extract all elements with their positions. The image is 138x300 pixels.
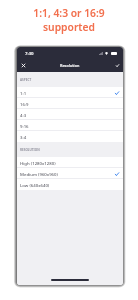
button[interactable]: Low (640x640) xyxy=(17,179,123,190)
staticText: 9:16 xyxy=(20,123,29,129)
button[interactable]: Close xyxy=(17,59,29,72)
staticText: 16:9 xyxy=(20,101,29,107)
staticText: 7:30 xyxy=(25,50,34,56)
button[interactable]: 16:9 xyxy=(17,98,123,109)
staticText: 1:1, 4:3 or 16:9 supported xyxy=(33,6,105,34)
staticText: ASPECT xyxy=(20,78,32,82)
staticText: High (1280x1280) xyxy=(20,160,56,166)
button[interactable]: 4:3 xyxy=(17,109,123,120)
staticText: RESOLUTION xyxy=(20,148,40,152)
staticText: 4:3 xyxy=(20,112,27,118)
button[interactable]: 3:4 xyxy=(17,131,123,142)
staticText: Resolution xyxy=(60,63,80,68)
staticText: Medium (960x960) xyxy=(20,171,58,177)
button[interactable]: 9:16 xyxy=(17,120,123,131)
staticText: 3:4 xyxy=(20,134,27,140)
staticText: Low (640x640) xyxy=(20,182,50,188)
button[interactable]: Medium (960x960) xyxy=(17,168,123,179)
button[interactable]: High (1280x1280) xyxy=(17,157,123,168)
button[interactable]: Confirm xyxy=(111,59,123,72)
staticText: 1:1 xyxy=(20,90,27,96)
button[interactable]: 1:1 xyxy=(17,87,123,98)
